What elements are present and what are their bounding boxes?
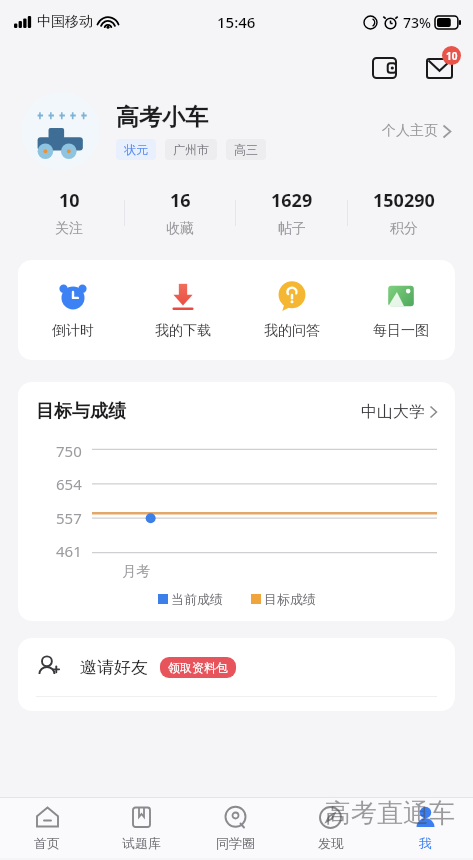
staticText: 首页: [34, 835, 60, 851]
staticText: 750: [56, 441, 82, 461]
button[interactable]: 我的下载: [128, 278, 237, 342]
button[interactable]: 试题库: [94, 798, 188, 858]
staticText: 当前成绩: [171, 591, 223, 607]
staticText: 试题库: [122, 835, 161, 851]
staticText: 月考: [122, 563, 150, 581]
button[interactable]: 个人主页: [382, 122, 451, 140]
button[interactable]: 邀请好友: [18, 638, 455, 696]
staticText: 中国移动: [37, 13, 93, 31]
button[interactable]: 150290: [348, 184, 459, 242]
staticText: 高考直通车: [325, 797, 455, 830]
staticText: 广州市: [173, 142, 209, 157]
staticText: 我: [419, 835, 432, 851]
staticText: 461: [56, 541, 82, 561]
staticText: 654: [56, 474, 82, 494]
staticText: 发现: [318, 835, 344, 851]
staticText: 10: [59, 188, 80, 213]
staticText: 邀请好友: [80, 657, 148, 678]
staticText: 557: [56, 508, 82, 528]
button[interactable]: 发现: [283, 798, 378, 858]
staticText: 10: [446, 49, 458, 63]
staticText: 领取资料包: [168, 660, 228, 675]
staticText: 关注: [55, 220, 83, 238]
staticText: 帖子: [278, 220, 306, 238]
button[interactable]: 我: [378, 798, 473, 858]
button[interactable]: 高考小车: [22, 92, 451, 170]
button[interactable]: 我的问答: [237, 278, 346, 342]
staticText: 每日一图: [373, 322, 429, 340]
button[interactable]: Messages: [419, 48, 459, 88]
staticText: 收藏: [166, 220, 194, 238]
staticText: 同学圈: [216, 835, 255, 851]
staticText: 目标与成绩: [36, 400, 126, 423]
button[interactable]: 首页: [0, 798, 94, 858]
staticText: 150290: [373, 188, 435, 213]
staticText: 高三: [234, 142, 258, 157]
staticText: 我的问答: [264, 322, 320, 340]
button[interactable]: 1629: [236, 184, 347, 242]
staticText: 16: [170, 188, 191, 213]
button[interactable]: 每日一图: [346, 278, 455, 342]
button[interactable]: Wallet: [365, 49, 403, 87]
staticText: 目标成绩: [264, 591, 316, 607]
button[interactable]: 倒计时: [18, 278, 128, 342]
button[interactable]: 同学圈: [188, 798, 283, 858]
staticText: 积分: [390, 220, 418, 238]
staticText: 状元: [124, 142, 148, 157]
staticText: 倒计时: [52, 322, 94, 340]
button[interactable]: 10: [14, 184, 124, 242]
staticText: 高考小车: [116, 103, 208, 132]
staticText: 73%: [403, 13, 431, 32]
button[interactable]: 中山大学: [361, 402, 437, 422]
staticText: 中山大学: [361, 402, 425, 422]
staticText: 个人主页: [382, 122, 438, 140]
staticText: 我的下载: [155, 322, 211, 340]
button[interactable]: 16: [125, 184, 235, 242]
staticText: 1629: [271, 188, 313, 213]
staticText: 15:46: [217, 12, 256, 32]
